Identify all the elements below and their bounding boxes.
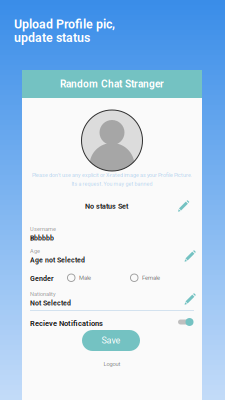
staticText: Its a request. You may get banned <box>71 181 152 187</box>
staticText: Male <box>79 274 91 281</box>
button[interactable]: Male <box>67 274 91 281</box>
button[interactable]: No status Set <box>22 197 202 213</box>
staticText: Age not Selected <box>30 256 85 264</box>
staticText: Random Chat Stranger <box>60 78 164 90</box>
button[interactable]: Username <box>22 223 202 245</box>
staticText: Bbbbbb <box>30 234 54 242</box>
staticText: Age <box>30 248 40 254</box>
button[interactable]: Nationality <box>22 288 202 310</box>
button[interactable]: Age <box>22 245 202 267</box>
staticText: Logout <box>103 361 120 367</box>
button[interactable]: Save <box>82 330 140 351</box>
staticText: Username <box>30 226 56 232</box>
staticText: Not Selected <box>30 299 71 307</box>
staticText: Upload Profile pic, <box>14 17 115 31</box>
button[interactable]: Female <box>130 274 160 281</box>
staticText: No status Set <box>85 202 128 210</box>
staticText: Nationality <box>30 291 56 297</box>
staticText: Female <box>142 274 160 281</box>
button[interactable]: Logout <box>22 359 202 369</box>
button[interactable]: Recieve Notifications <box>22 313 202 331</box>
staticText: update status <box>14 30 90 45</box>
staticText: Please don't use any explicit or X-rated… <box>32 172 192 178</box>
staticText: Recieve Notifications <box>30 319 103 328</box>
button[interactable]: Change profile picture <box>81 110 142 171</box>
staticText: Gender <box>30 274 54 283</box>
staticText: Save <box>101 335 120 346</box>
